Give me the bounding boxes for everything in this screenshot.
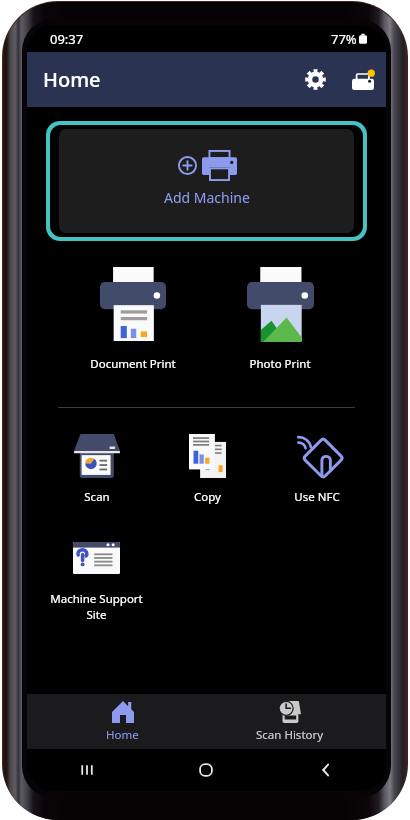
- button[interactable]: Add Machine: [59, 129, 354, 233]
- staticText: Photo Print: [249, 356, 311, 372]
- staticText: Document Print: [90, 356, 176, 372]
- staticText: 77%: [331, 30, 357, 48]
- button[interactable]: Photo Print: [206, 267, 354, 372]
- staticText: Machine Support Site: [50, 591, 143, 622]
- button[interactable]: Scan: [41, 434, 152, 505]
- button[interactable]: Back: [266, 749, 386, 791]
- button[interactable]: Use NFC: [262, 434, 372, 505]
- staticText: Scan: [84, 489, 110, 505]
- staticText: 09:37: [50, 30, 84, 48]
- staticText: Scan History: [256, 727, 324, 743]
- button[interactable]: Settings: [291, 52, 340, 107]
- staticText: Home: [43, 66, 101, 93]
- button[interactable]: Copy: [152, 434, 262, 505]
- staticText: Add Machine: [164, 188, 250, 207]
- staticText: Use NFC: [294, 489, 340, 505]
- button[interactable]: Machine Support Site: [41, 542, 152, 622]
- button[interactable]: Scan History: [206, 694, 374, 749]
- button[interactable]: Home: [39, 694, 206, 749]
- button[interactable]: Home: [146, 749, 266, 791]
- button[interactable]: Document Print: [59, 267, 206, 372]
- staticText: Home: [106, 727, 139, 743]
- button[interactable]: Recent apps: [27, 749, 146, 791]
- staticText: Copy: [194, 489, 221, 505]
- button[interactable]: Printer status: [340, 52, 386, 107]
